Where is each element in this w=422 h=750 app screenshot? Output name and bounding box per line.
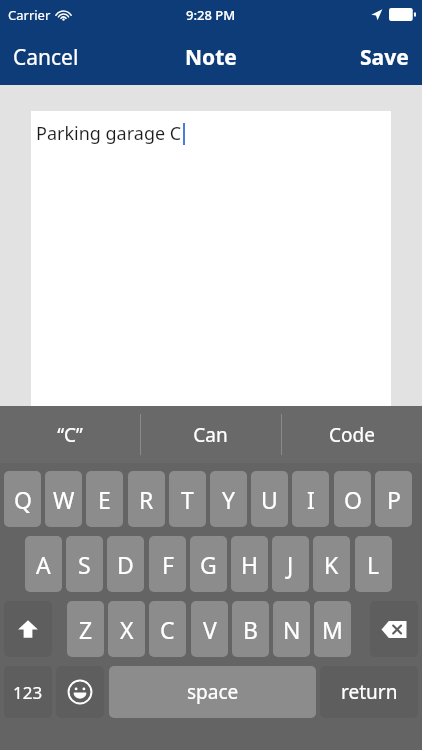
button[interactable]: Shift bbox=[4, 601, 52, 657]
staticText: M bbox=[322, 614, 343, 645]
staticText: V bbox=[203, 614, 217, 645]
staticText: Q bbox=[14, 484, 32, 515]
button[interactable]: E bbox=[86, 471, 123, 527]
staticText: R bbox=[139, 484, 154, 515]
button[interactable]: T bbox=[169, 471, 206, 527]
button[interactable]: Code bbox=[281, 406, 422, 463]
button[interactable]: R bbox=[128, 471, 165, 527]
button[interactable]: I bbox=[292, 471, 329, 527]
button[interactable]: O bbox=[334, 471, 371, 527]
button[interactable]: Backspace bbox=[370, 601, 418, 657]
staticText: P bbox=[387, 484, 401, 515]
button[interactable]: D bbox=[107, 536, 144, 592]
staticText: D bbox=[117, 549, 134, 580]
button[interactable]: Can bbox=[140, 406, 281, 463]
button[interactable]: Save bbox=[347, 35, 422, 80]
staticText: H bbox=[241, 549, 259, 580]
button[interactable]: J bbox=[272, 536, 309, 592]
button[interactable]: L bbox=[355, 536, 392, 592]
staticText: U bbox=[261, 484, 278, 515]
button[interactable]: Cancel bbox=[0, 35, 92, 80]
staticText: E bbox=[98, 484, 111, 515]
staticText: Carrier bbox=[8, 6, 51, 24]
staticText: W bbox=[53, 484, 75, 515]
staticText: O bbox=[344, 484, 362, 515]
button[interactable]: A bbox=[25, 536, 62, 592]
button[interactable]: Y bbox=[210, 471, 247, 527]
button[interactable]: Emoji bbox=[56, 666, 104, 718]
staticText: Cancel bbox=[13, 43, 79, 72]
staticText: X bbox=[120, 614, 134, 645]
staticText: L bbox=[367, 549, 380, 580]
button[interactable]: N bbox=[273, 601, 310, 657]
staticText: Can bbox=[193, 422, 228, 448]
button[interactable]: space bbox=[109, 666, 316, 718]
staticText: “C” bbox=[57, 422, 83, 448]
staticText: C bbox=[160, 614, 175, 645]
button[interactable]: K bbox=[313, 536, 350, 592]
staticText: space bbox=[187, 679, 239, 705]
staticText: B bbox=[243, 614, 258, 645]
staticText: Z bbox=[79, 614, 93, 645]
button[interactable]: X bbox=[108, 601, 145, 657]
staticText: N bbox=[283, 614, 301, 645]
staticText: Y bbox=[222, 484, 236, 515]
button[interactable]: “C” bbox=[0, 406, 140, 463]
staticText: I bbox=[307, 484, 315, 515]
button[interactable]: F bbox=[149, 536, 186, 592]
staticText: return bbox=[341, 679, 398, 705]
staticText: A bbox=[36, 549, 51, 580]
button[interactable]: Parking garage C bbox=[31, 111, 391, 406]
staticText: J bbox=[287, 549, 294, 580]
staticText: G bbox=[200, 549, 217, 580]
button[interactable]: U bbox=[251, 471, 288, 527]
button[interactable]: W bbox=[45, 471, 82, 527]
staticText: Note bbox=[185, 43, 237, 72]
button[interactable]: 123 bbox=[4, 666, 52, 718]
button[interactable]: Z bbox=[67, 601, 104, 657]
button[interactable]: Q bbox=[4, 471, 41, 527]
staticText: F bbox=[162, 549, 174, 580]
button[interactable]: H bbox=[231, 536, 268, 592]
button[interactable]: return bbox=[320, 666, 418, 718]
button[interactable]: M bbox=[314, 601, 351, 657]
button[interactable]: C bbox=[149, 601, 186, 657]
button[interactable]: S bbox=[66, 536, 103, 592]
button[interactable]: G bbox=[190, 536, 227, 592]
button[interactable]: B bbox=[232, 601, 269, 657]
staticText: Save bbox=[360, 43, 409, 72]
staticText: K bbox=[324, 549, 339, 580]
staticText: 9:28 PM bbox=[186, 6, 236, 24]
button[interactable]: P bbox=[375, 471, 412, 527]
staticText: Code bbox=[329, 422, 375, 448]
staticText: T bbox=[181, 484, 194, 515]
staticText: S bbox=[78, 549, 91, 580]
staticText: 123 bbox=[13, 681, 43, 704]
button[interactable]: V bbox=[191, 601, 228, 657]
staticText: Parking garage C bbox=[36, 121, 182, 146]
